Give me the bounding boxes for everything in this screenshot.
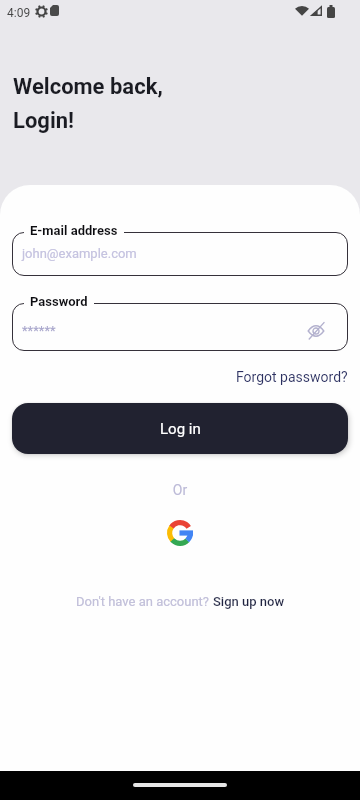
staticText: Log in xyxy=(160,420,201,438)
button[interactable] xyxy=(167,520,193,546)
button[interactable]: ****** xyxy=(12,303,348,351)
staticText: E-mail address xyxy=(30,223,118,238)
button[interactable]: john@example.com xyxy=(12,232,348,276)
staticText: Or xyxy=(0,482,360,498)
button[interactable]: Log in xyxy=(12,403,348,454)
staticText: Welcome back, Login! xyxy=(13,74,163,133)
staticText: Password xyxy=(30,294,88,309)
staticText: ****** xyxy=(22,323,56,338)
button[interactable]: Forgot password? xyxy=(236,369,348,385)
staticText: john@example.com xyxy=(22,246,137,261)
staticText: 4:09 xyxy=(7,6,31,20)
staticText: Don't have an account? xyxy=(76,594,213,609)
staticText: Sign up now xyxy=(213,594,285,609)
button[interactable]: Don't have an account? xyxy=(76,594,285,609)
